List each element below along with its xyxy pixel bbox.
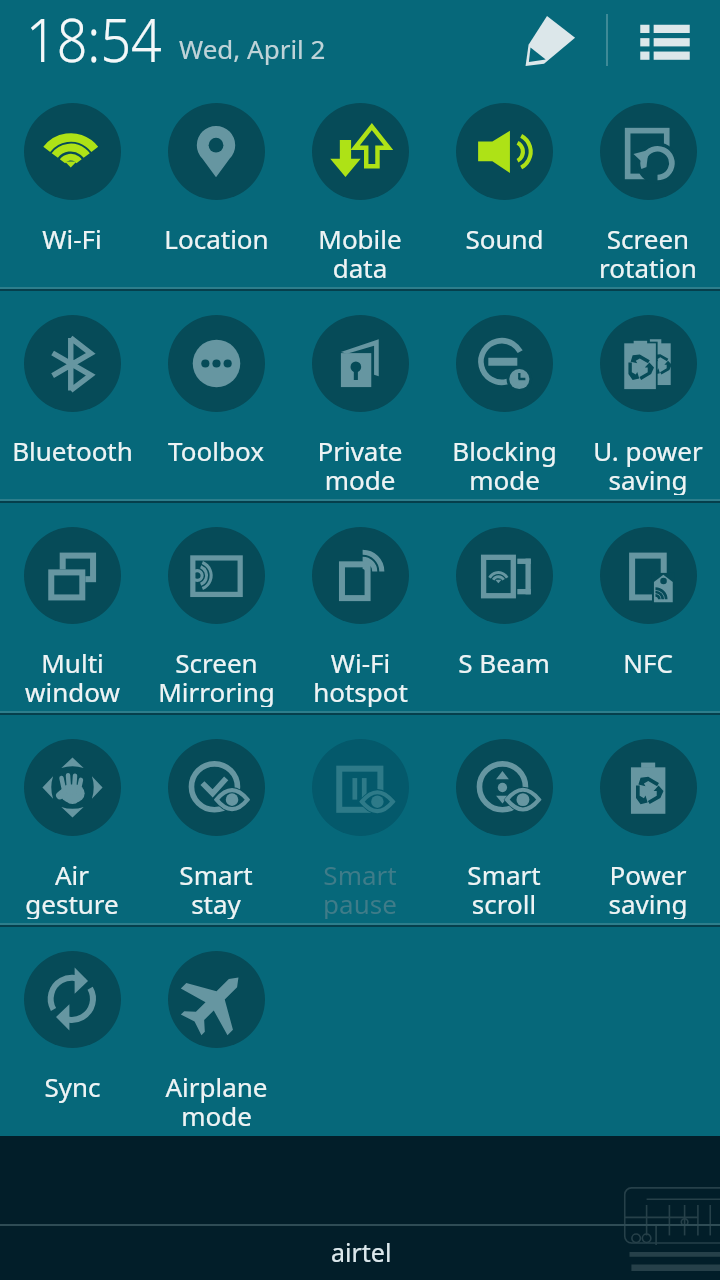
- staticText: U. power saving: [593, 433, 703, 495]
- staticText: Bluetooth: [12, 433, 133, 468]
- staticText: Sound: [465, 221, 544, 256]
- button[interactable]: Smart scroll: [432, 711, 576, 919]
- staticText: Wed, April 2: [179, 31, 326, 66]
- staticText: Power saving: [608, 857, 688, 919]
- staticText: Smart stay: [179, 857, 253, 919]
- button[interactable]: U. power saving: [576, 287, 720, 495]
- staticText: Sync: [44, 1069, 101, 1104]
- staticText: Toolbox: [168, 433, 264, 468]
- button[interactable]: Smart stay: [144, 711, 288, 919]
- button[interactable]: Private mode: [288, 287, 432, 495]
- button[interactable]: NFC: [576, 499, 720, 707]
- button[interactable]: Screen Mirroring: [144, 499, 288, 707]
- button[interactable]: Sound: [432, 75, 576, 283]
- staticText: Wi-Fi hotspot: [313, 645, 408, 707]
- staticText: Mobile data: [318, 221, 402, 283]
- staticText: airtel: [331, 1235, 392, 1269]
- staticText: Airplane mode: [165, 1069, 268, 1131]
- staticText: Private mode: [317, 433, 403, 495]
- staticText: Location: [164, 221, 269, 256]
- button[interactable]: Mobile data: [288, 75, 432, 283]
- staticText: Screen rotation: [599, 221, 697, 283]
- button[interactable]: Edit: [516, 8, 582, 74]
- button[interactable]: Sync: [0, 923, 144, 1131]
- staticText: Smart pause: [323, 857, 397, 919]
- staticText: Smart scroll: [467, 857, 541, 919]
- staticText: S Beam: [458, 645, 550, 680]
- button[interactable]: S Beam: [432, 499, 576, 707]
- button[interactable]: Air gesture: [0, 711, 144, 919]
- button[interactable]: Wi-Fi hotspot: [288, 499, 432, 707]
- staticText: Blocking mode: [452, 433, 557, 495]
- button[interactable]: All settings: [632, 0, 698, 66]
- button[interactable]: Smart pause: [288, 711, 432, 919]
- button[interactable]: Airplane mode: [144, 923, 288, 1131]
- staticText: 18:54: [26, 0, 162, 73]
- button[interactable]: Multi window: [0, 499, 144, 707]
- staticText: Wi-Fi: [42, 221, 102, 256]
- button[interactable]: Power saving: [576, 711, 720, 919]
- staticText: NFC: [623, 645, 673, 680]
- button[interactable]: Screen rotation: [576, 75, 720, 283]
- button[interactable]: Wi-Fi: [0, 75, 144, 283]
- staticText: Air gesture: [25, 857, 119, 919]
- staticText: Screen Mirroring: [158, 645, 275, 707]
- button[interactable]: Bluetooth: [0, 287, 144, 495]
- button[interactable]: Toolbox: [144, 287, 288, 495]
- button[interactable]: Blocking mode: [432, 287, 576, 495]
- staticText: Multi window: [25, 645, 120, 707]
- button[interactable]: Location: [144, 75, 288, 283]
